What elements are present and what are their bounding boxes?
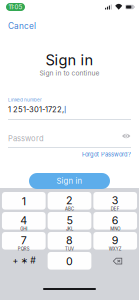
staticText: #: [30, 255, 35, 266]
button[interactable]: Delete: [93, 252, 137, 270]
button[interactable]: 3: [93, 192, 137, 210]
staticText: Password: [8, 134, 44, 143]
button[interactable]: 8: [48, 232, 91, 250]
staticText: DEF: [111, 206, 120, 211]
staticText: 0: [66, 255, 73, 268]
staticText: ABC: [65, 206, 74, 211]
staticText: 3: [112, 194, 119, 207]
button[interactable]: 6: [93, 212, 137, 230]
staticText: MNO: [110, 226, 120, 231]
staticText: 1 251-301-1722,: [8, 105, 64, 114]
button[interactable]: 4: [2, 212, 46, 230]
button[interactable]: Cancel: [6, 19, 38, 33]
staticText: Linked number: [8, 97, 42, 103]
button[interactable]: 9: [93, 232, 137, 250]
button[interactable]: Show password: [121, 132, 131, 140]
staticText: 8: [66, 234, 73, 247]
staticText: JKL: [66, 226, 73, 231]
staticText: 9: [112, 234, 119, 247]
button[interactable]: 0: [48, 252, 91, 270]
staticText: 6: [112, 214, 119, 227]
staticText: 11:05: [8, 3, 22, 11]
button[interactable]: Symbols: [2, 252, 46, 270]
staticText: TUV: [65, 246, 74, 251]
button[interactable]: 2: [48, 192, 91, 210]
staticText: ∗: [21, 255, 28, 265]
staticText: Cancel: [8, 21, 36, 31]
staticText: 2: [66, 194, 73, 207]
staticText: 7: [21, 234, 27, 247]
staticText: PQRS: [18, 246, 30, 251]
button[interactable]: 7: [2, 232, 46, 250]
staticText: 1: [22, 195, 26, 208]
button[interactable]: Forgot Password?: [82, 151, 131, 158]
staticText: 5: [66, 214, 72, 227]
staticText: Forgot Password?: [82, 151, 131, 158]
button[interactable]: 1: [2, 192, 46, 210]
staticText: WXYZ: [109, 246, 122, 251]
staticText: 4: [20, 214, 27, 227]
staticText: Sign in: [56, 176, 82, 186]
staticText: GHI: [20, 226, 27, 231]
staticText: Sign in to continue: [39, 69, 99, 77]
staticText: Sign in: [45, 51, 93, 69]
staticText: +: [12, 255, 18, 266]
button[interactable]: Sign in: [29, 173, 110, 189]
button[interactable]: 5: [48, 212, 91, 230]
